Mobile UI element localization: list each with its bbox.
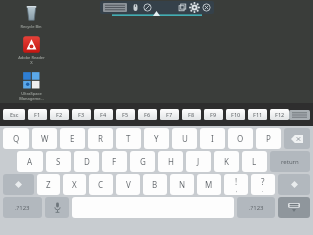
button[interactable]: F11	[248, 109, 267, 120]
staticText: .	[262, 187, 264, 194]
button[interactable]: Windows	[178, 3, 187, 12]
button[interactable]: Close	[202, 3, 211, 12]
staticText: Y	[154, 133, 159, 144]
button[interactable]: F4	[94, 109, 113, 120]
staticText: L	[252, 156, 257, 167]
staticText: Recycle Bin	[20, 24, 42, 29]
button[interactable]: Backspace	[284, 128, 310, 149]
button[interactable]: Shift	[278, 174, 310, 195]
staticText: Q	[13, 133, 20, 144]
staticText: T	[126, 133, 131, 144]
button[interactable]: I	[200, 128, 225, 149]
staticText: F4	[100, 111, 107, 118]
button[interactable]: Dictate	[45, 197, 69, 218]
staticText: F2	[56, 111, 63, 118]
button[interactable]: W	[32, 128, 57, 149]
button[interactable]: N	[170, 174, 194, 195]
button[interactable]: D	[74, 151, 99, 172]
button[interactable]: X	[63, 174, 86, 195]
button[interactable]: F8	[182, 109, 201, 120]
button[interactable]: C	[89, 174, 113, 195]
button[interactable]: Mouse	[131, 3, 140, 12]
button[interactable]: Settings	[190, 3, 199, 12]
button[interactable]: Recycle Bin	[8, 4, 54, 29]
staticText: K	[224, 156, 229, 167]
button[interactable]: U	[172, 128, 197, 149]
button[interactable]: L	[242, 151, 267, 172]
staticText: !	[235, 176, 238, 187]
button[interactable]: Z	[37, 174, 60, 195]
button[interactable]: K	[214, 151, 239, 172]
button[interactable]: G	[130, 151, 155, 172]
staticText: Adobe Reader X	[18, 55, 45, 65]
button[interactable]: O	[228, 128, 253, 149]
staticText: F1	[34, 111, 41, 118]
staticText: S	[56, 156, 61, 167]
button[interactable]: F7	[160, 109, 179, 120]
staticText: .?123	[249, 204, 264, 212]
staticText: UltraSpace Manageme...	[19, 91, 44, 101]
staticText: ?	[261, 176, 265, 187]
staticText: .?123	[15, 204, 30, 212]
button[interactable]: .?123	[237, 197, 275, 218]
button[interactable]: F5	[116, 109, 135, 120]
staticText: A	[27, 156, 33, 167]
button[interactable]: UltraSpace Manageme...	[8, 71, 54, 101]
button[interactable]: F1	[28, 109, 47, 120]
button[interactable]: S	[46, 151, 71, 172]
staticText: P	[266, 133, 271, 144]
button[interactable]: Keyboard	[103, 3, 127, 12]
button[interactable]: E	[60, 128, 85, 149]
button[interactable]: F9	[204, 109, 223, 120]
button[interactable]: F	[102, 151, 127, 172]
button[interactable]: F2	[50, 109, 69, 120]
staticText: Z	[46, 179, 51, 190]
button[interactable]: Dismiss keyboard	[278, 197, 310, 218]
button[interactable]: Q	[3, 128, 29, 149]
button[interactable]: B	[143, 174, 167, 195]
button[interactable]: ?	[251, 174, 275, 195]
button[interactable]: Esc	[3, 109, 25, 120]
staticText: N	[179, 179, 186, 190]
button[interactable]: H	[158, 151, 183, 172]
button[interactable]: Y	[144, 128, 169, 149]
button[interactable]: Shift	[3, 174, 34, 195]
button[interactable]: A	[17, 151, 43, 172]
staticText: F8	[188, 111, 195, 118]
staticText: D	[84, 156, 90, 167]
button[interactable]: Hide keyboard	[289, 110, 310, 120]
staticText: C	[98, 179, 104, 190]
staticText: O	[237, 133, 244, 144]
button[interactable]: F12	[270, 109, 289, 120]
staticText: F11	[253, 111, 263, 118]
staticText: X	[72, 179, 77, 190]
button[interactable]: M	[197, 174, 221, 195]
staticText: F10	[231, 111, 241, 118]
staticText: R	[98, 133, 103, 144]
button[interactable]: P	[256, 128, 281, 149]
button[interactable]: R	[88, 128, 113, 149]
button[interactable]: !	[224, 174, 248, 195]
staticText: F5	[122, 111, 129, 118]
button[interactable]: return	[270, 151, 310, 172]
button[interactable]: F3	[72, 109, 91, 120]
staticText: M	[205, 179, 213, 190]
button[interactable]: J	[186, 151, 211, 172]
button[interactable]: Touchpad	[143, 3, 152, 12]
staticText: E	[70, 133, 75, 144]
button[interactable]: .?123	[3, 197, 42, 218]
button[interactable]: V	[116, 174, 140, 195]
button[interactable]: Adobe Reader X	[8, 35, 54, 65]
button[interactable]: F6	[138, 109, 157, 120]
staticText: F3	[78, 111, 85, 118]
staticText: J	[197, 156, 200, 167]
staticText: I	[211, 133, 214, 144]
staticText: Esc	[10, 111, 19, 118]
staticText: F6	[144, 111, 151, 118]
button[interactable]: T	[116, 128, 141, 149]
staticText: G	[140, 156, 146, 167]
button[interactable]: F10	[226, 109, 245, 120]
staticText: V	[126, 179, 131, 190]
staticText: U	[182, 133, 188, 144]
